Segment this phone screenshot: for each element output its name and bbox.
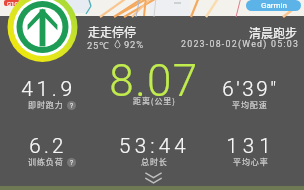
staticText: 2023-08-02(Wed) 05:03 bbox=[181, 39, 300, 49]
button[interactable]: 6'39" bbox=[180, 77, 304, 101]
staticText: 92% bbox=[124, 39, 144, 50]
button[interactable]: Garmin bbox=[246, 0, 301, 11]
staticText: G10 bbox=[7, 0, 18, 6]
staticText: 131 bbox=[226, 134, 276, 158]
staticText: 6.2 bbox=[29, 134, 67, 158]
staticText: 25℃ bbox=[87, 39, 110, 52]
staticText: 53:44 bbox=[119, 134, 190, 158]
button[interactable]: 展开更多 bbox=[141, 169, 165, 186]
staticText: Garmin bbox=[261, 1, 287, 10]
button[interactable]: 53:44 bbox=[84, 134, 224, 158]
button[interactable]: 活动类型 bbox=[7, 0, 78, 63]
staticText: 6'39" bbox=[222, 77, 279, 101]
staticText: 平均心率 bbox=[233, 156, 269, 168]
staticText: 41.9 bbox=[21, 77, 76, 102]
staticText: 训练负荷 bbox=[28, 156, 64, 168]
staticText: 8.07 bbox=[109, 55, 199, 107]
button[interactable]: 6.2 bbox=[0, 134, 118, 158]
staticText: 走走停停 bbox=[88, 23, 137, 40]
staticText: 总时长 bbox=[141, 156, 168, 168]
button[interactable]: 131 bbox=[181, 134, 304, 158]
button[interactable]: 8.07 bbox=[84, 55, 224, 107]
staticText: ? bbox=[70, 159, 74, 167]
staticText: 清晨跑步 bbox=[249, 24, 298, 41]
staticText: 即时跑力 bbox=[28, 99, 64, 111]
button[interactable]: 41.9 bbox=[0, 77, 118, 102]
staticText: 距离(公里) bbox=[133, 95, 176, 107]
staticText: ? bbox=[70, 102, 74, 110]
staticText: 平均配速 bbox=[232, 99, 268, 111]
